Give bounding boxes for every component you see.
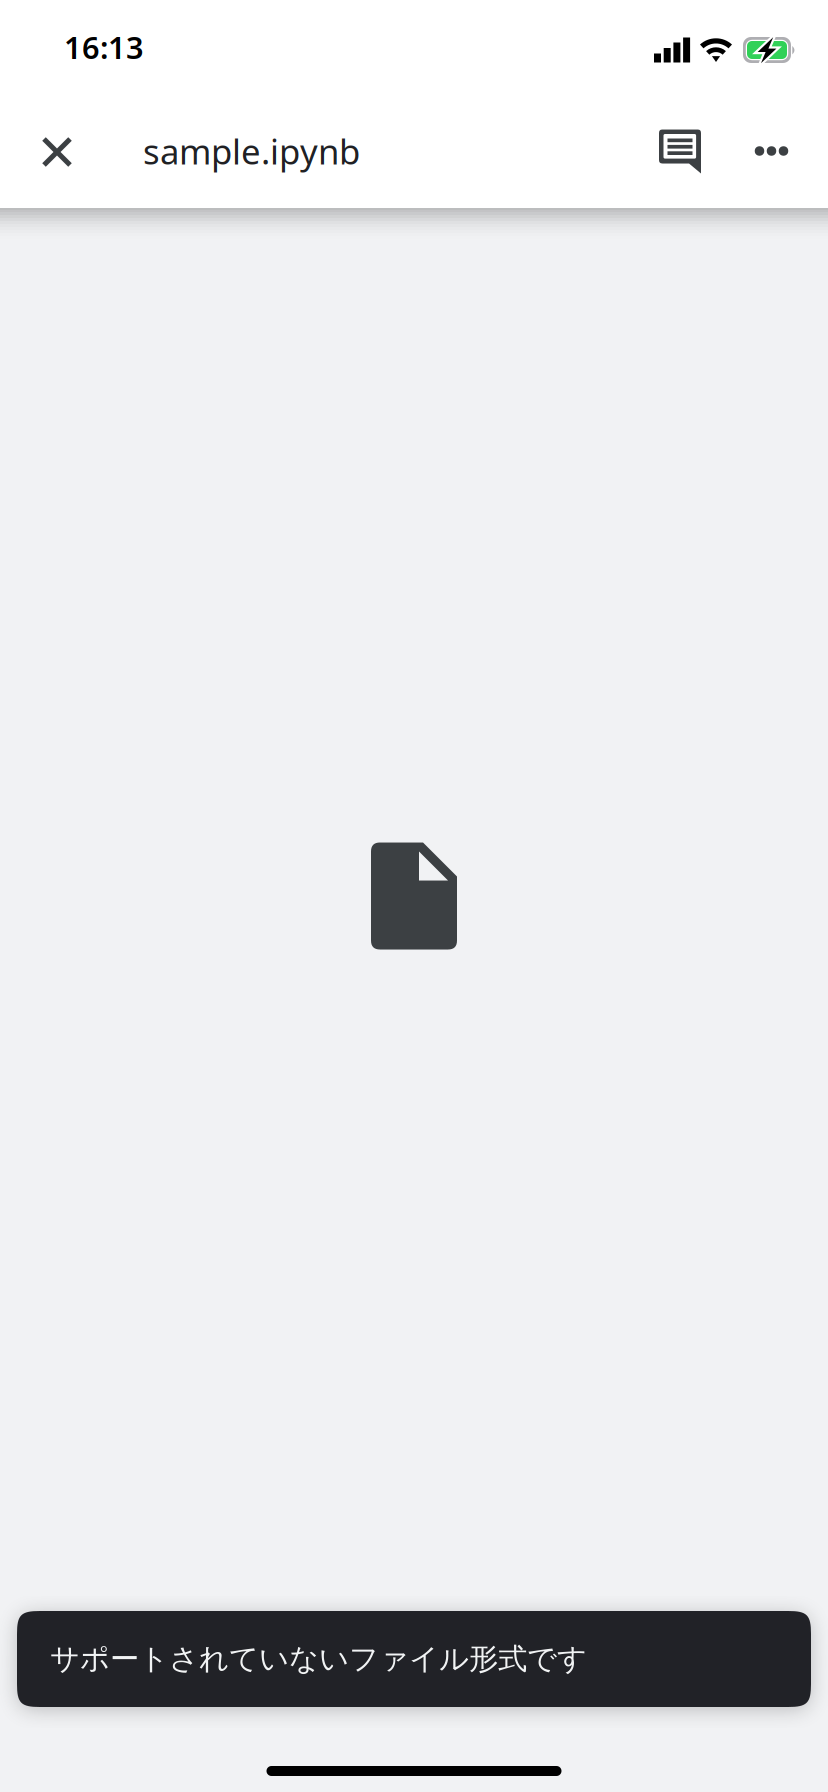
button[interactable]: Comments bbox=[597, 94, 715, 208]
staticText: 16:13 bbox=[64, 27, 144, 67]
staticText: sample.ipynb bbox=[143, 128, 360, 174]
staticText: サポートされていないファイル形式です bbox=[50, 1641, 587, 1677]
button[interactable]: More options bbox=[715, 94, 828, 208]
button[interactable]: Close bbox=[0, 94, 112, 208]
